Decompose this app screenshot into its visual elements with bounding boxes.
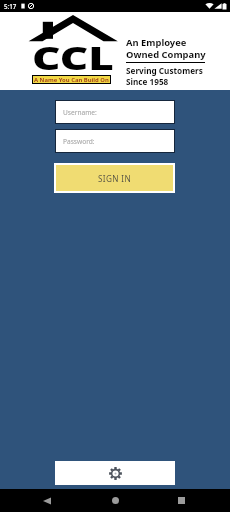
staticText: Password: bbox=[63, 137, 95, 146]
staticText: A Name You Can Build On bbox=[34, 76, 109, 84]
staticText: An Employee bbox=[126, 36, 187, 49]
button[interactable]: SIGN IN bbox=[56, 165, 173, 191]
button[interactable]: Recent apps bbox=[167, 490, 195, 511]
staticText: 5:17 bbox=[4, 2, 17, 10]
staticText: Since 1958 bbox=[126, 76, 169, 87]
button[interactable]: Home bbox=[101, 490, 129, 511]
staticText: Serving Customers bbox=[126, 65, 203, 76]
button[interactable]: Username: bbox=[55, 100, 175, 124]
button[interactable]: Password: bbox=[55, 129, 175, 153]
staticText: CCL bbox=[32, 36, 114, 79]
staticText: Username: bbox=[63, 108, 97, 117]
staticText: Owned Company bbox=[126, 48, 206, 61]
button[interactable]: Back bbox=[33, 490, 61, 511]
staticText: SIGN IN bbox=[98, 173, 132, 184]
button[interactable]: Settings bbox=[55, 461, 175, 485]
